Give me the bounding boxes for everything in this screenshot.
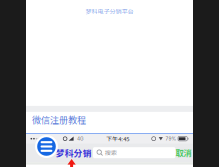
button[interactable]: 搜索 [93, 147, 175, 158]
staticText: 微信注册教程 [32, 113, 86, 126]
staticText: 搜索 [105, 148, 117, 157]
button[interactable]: 取消 [175, 147, 191, 159]
staticText: 79% [165, 136, 176, 142]
button[interactable]: 梦科分销 [55, 146, 91, 159]
staticText: 梦科电子分销平台 [85, 7, 133, 16]
staticText: 梦科分销 [55, 146, 91, 159]
staticText: 4G [77, 136, 84, 142]
staticText: 下午4:45 [106, 134, 129, 143]
staticText: 取消 [175, 147, 191, 159]
